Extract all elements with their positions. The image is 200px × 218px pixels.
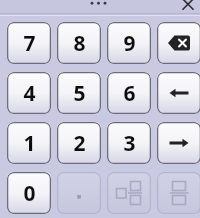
staticText: 8 (73, 29, 86, 58)
button[interactable]: Stack layout (157, 172, 200, 214)
staticText: 7 (23, 29, 36, 58)
button[interactable]: 2 (57, 122, 101, 164)
button[interactable]: 3 (107, 122, 151, 164)
button[interactable]: 7 (7, 22, 51, 64)
button[interactable]: Split layout (107, 172, 151, 214)
staticText: 6 (123, 79, 136, 108)
button[interactable]: Close (179, 0, 197, 9)
staticText: 9 (123, 29, 136, 58)
button[interactable]: 4 (7, 72, 51, 114)
staticText: 5 (73, 79, 86, 108)
staticText: 1 (23, 129, 36, 158)
button[interactable]: Decimal point (57, 172, 101, 214)
button[interactable]: 6 (107, 72, 151, 114)
staticText: 0 (23, 179, 36, 208)
button[interactable]: 9 (107, 22, 151, 64)
staticText: 4 (23, 79, 36, 108)
button[interactable]: Move right (157, 122, 200, 164)
button[interactable]: More options (87, 0, 113, 10)
button[interactable]: Move left (157, 72, 200, 114)
button[interactable]: 1 (7, 122, 51, 164)
button[interactable]: 0 (7, 172, 51, 214)
button[interactable]: 5 (57, 72, 101, 114)
button[interactable]: Backspace (157, 22, 200, 64)
button[interactable]: 8 (57, 22, 101, 64)
staticText: 3 (123, 129, 136, 158)
staticText: 2 (73, 129, 86, 158)
